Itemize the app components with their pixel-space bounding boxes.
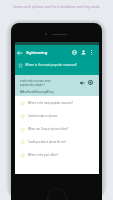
staticText: Where is the most popular museum? bbox=[25, 63, 77, 67]
staticText: I want to take a city tour. bbox=[28, 114, 58, 118]
button[interactable]: Where is the most popular museum? bbox=[15, 60, 99, 75]
button[interactable]: Home bbox=[47, 188, 67, 200]
button[interactable]: Play audio bbox=[78, 79, 85, 86]
staticText: Sightseeing bbox=[26, 50, 48, 55]
staticText: When can I buy a city tour ticket? bbox=[28, 127, 69, 131]
button[interactable]: Back bbox=[15, 48, 25, 58]
staticText: onde esta o museu mais bbox=[20, 79, 51, 83]
staticText: Could you take a photo for me? bbox=[28, 140, 67, 144]
button[interactable]: When can I buy a city tour ticket? bbox=[15, 122, 99, 135]
staticText: popular da cidade ? bbox=[20, 83, 45, 87]
button[interactable]: Language bbox=[70, 48, 79, 57]
button[interactable]: Could you take a photo for me? bbox=[15, 135, 99, 148]
button[interactable]: Account bbox=[79, 48, 88, 57]
staticText: Learn each phrase and its translation wo… bbox=[0, 4, 113, 9]
staticText: พิพิธภัณฑ์ที่นิยมอยู่ที่ไหน bbox=[20, 89, 54, 94]
button[interactable]: Where is the post office? bbox=[15, 148, 99, 161]
staticText: Where is the most popular museum? bbox=[28, 101, 73, 105]
button[interactable]: Where is the most popular museum? bbox=[15, 96, 99, 109]
button[interactable]: Record bbox=[87, 79, 94, 86]
button[interactable]: More options bbox=[88, 49, 95, 56]
button[interactable]: I want to take a city tour. bbox=[15, 109, 99, 122]
staticText: Where is the post office? bbox=[28, 153, 58, 157]
